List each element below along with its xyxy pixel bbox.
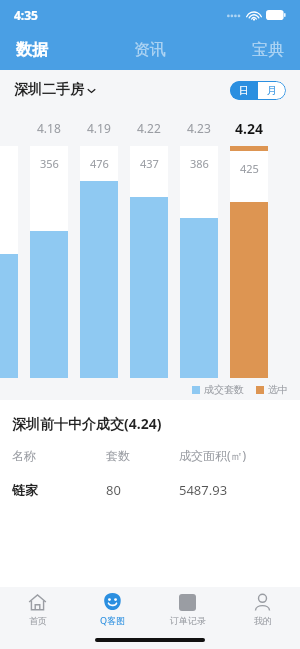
button[interactable]: 425 bbox=[230, 146, 268, 378]
button[interactable]: 数据 bbox=[0, 30, 100, 70]
staticText: 成交套数 bbox=[204, 383, 244, 396]
button[interactable]: 深圳二手房 bbox=[14, 81, 97, 99]
button[interactable] bbox=[0, 146, 18, 378]
staticText: 4.23 bbox=[187, 120, 211, 136]
staticText: 80 bbox=[106, 481, 179, 499]
staticText: 套数 bbox=[106, 448, 179, 463]
staticText: 月 bbox=[267, 84, 277, 97]
button[interactable]: 首页 bbox=[0, 587, 75, 631]
staticText: 日 bbox=[239, 84, 249, 97]
button[interactable]: 链家 bbox=[0, 481, 300, 499]
staticText: 4.18 bbox=[37, 120, 61, 136]
button[interactable]: 476 bbox=[80, 146, 118, 378]
button[interactable]: 订单记录 bbox=[150, 587, 225, 631]
staticText: 我的 bbox=[254, 615, 272, 626]
staticText: 选中 bbox=[268, 383, 288, 396]
staticText: 4.19 bbox=[87, 120, 111, 136]
staticText: 成交面积(㎡) bbox=[179, 447, 288, 463]
staticText: 链家 bbox=[12, 482, 106, 498]
staticText: 数据 bbox=[16, 40, 48, 60]
staticText: 名称 bbox=[12, 448, 106, 463]
staticText: 首页 bbox=[29, 615, 47, 626]
staticText: 386 bbox=[190, 156, 209, 171]
button[interactable]: 资讯 bbox=[100, 30, 200, 70]
staticText: 4:35 bbox=[14, 7, 38, 23]
button[interactable]: 386 bbox=[180, 146, 218, 378]
staticText: 资讯 bbox=[134, 40, 166, 60]
staticText: 4.24 bbox=[235, 119, 263, 138]
staticText: 476 bbox=[90, 156, 109, 171]
staticText: Q客图 bbox=[100, 614, 126, 626]
staticText: 宝典 bbox=[252, 40, 284, 60]
staticText: 深圳前十中介成交(4.24) bbox=[12, 414, 162, 433]
button[interactable]: 宝典 bbox=[200, 30, 300, 70]
button[interactable]: 356 bbox=[30, 146, 68, 378]
button[interactable]: 437 bbox=[130, 146, 168, 378]
button[interactable]: 我的 bbox=[225, 587, 300, 631]
staticText: 356 bbox=[40, 156, 59, 171]
staticText: 深圳二手房 bbox=[14, 81, 84, 99]
staticText: 订单记录 bbox=[170, 615, 206, 626]
button[interactable]: 月 bbox=[258, 81, 286, 100]
staticText: 425 bbox=[240, 161, 259, 176]
button[interactable]: 日 bbox=[230, 81, 258, 100]
button[interactable]: Q客图 bbox=[75, 587, 150, 631]
staticText: 5487.93 bbox=[179, 481, 288, 499]
staticText: 4.22 bbox=[137, 120, 161, 136]
staticText: 437 bbox=[140, 156, 159, 171]
